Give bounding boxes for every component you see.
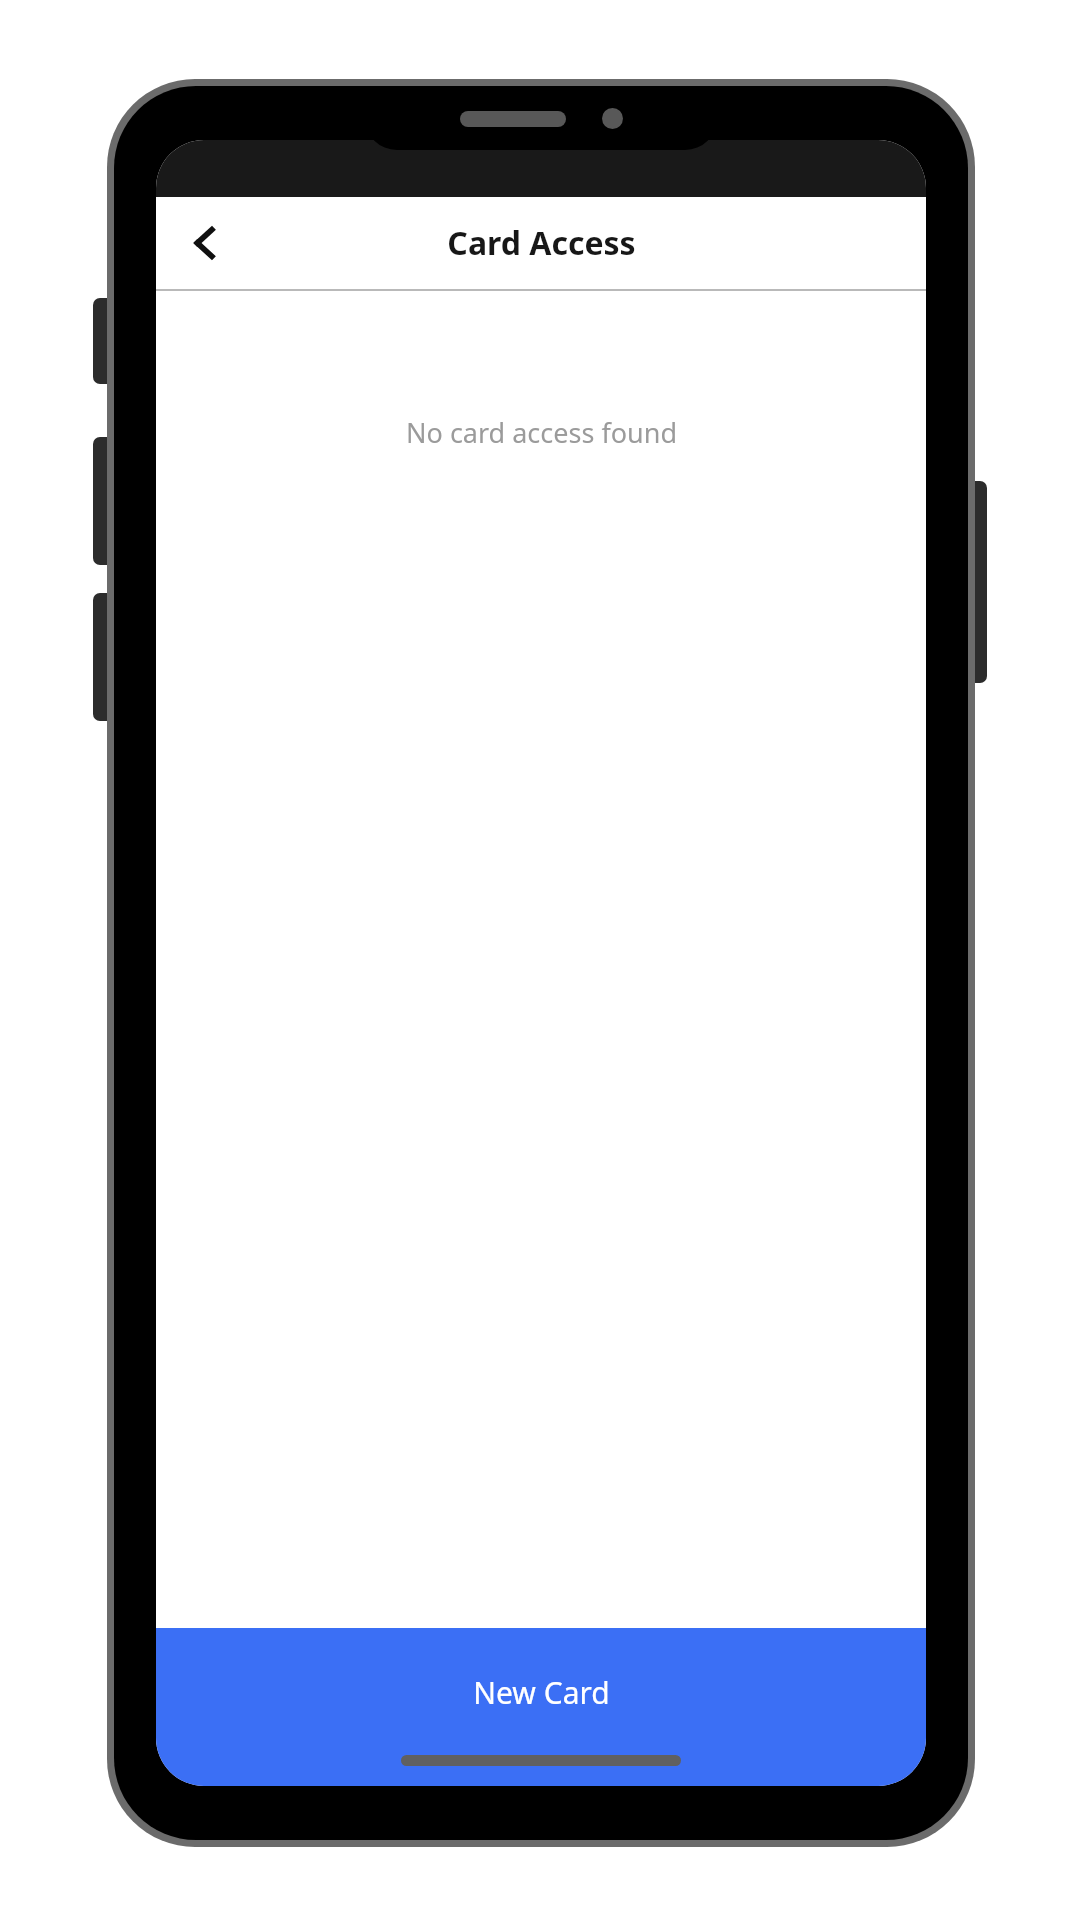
staticText: Card Access <box>447 221 636 265</box>
staticText: No card access found <box>406 414 677 451</box>
button[interactable]: Back <box>166 204 244 282</box>
staticText: New Card <box>473 1672 610 1713</box>
button[interactable]: New Card <box>156 1628 926 1786</box>
